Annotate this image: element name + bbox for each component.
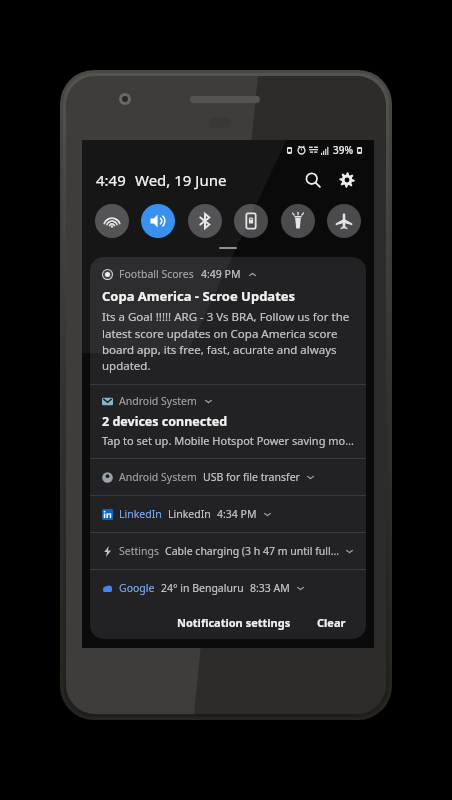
staticText: Wed, 19 June: [135, 170, 227, 190]
staticText: 2 devices connected: [102, 413, 228, 430]
button[interactable]: Search: [300, 167, 326, 193]
staticText: Cable charging (3 h 47 m until fully c..…: [165, 544, 339, 558]
button[interactable]: Sound: [141, 204, 175, 238]
button[interactable]: Airplane mode: [327, 204, 361, 238]
button[interactable]: Settings: [90, 533, 366, 569]
staticText: Its a Goal !!!!! ARG - 3 Vs BRA, Follow …: [102, 309, 354, 373]
button[interactable]: Android System: [90, 459, 366, 495]
button[interactable]: Android System: [90, 385, 366, 458]
staticText: Clear: [317, 615, 346, 630]
button[interactable]: Auto rotate: [234, 204, 268, 238]
staticText: LinkedIn: [168, 507, 211, 521]
button[interactable]: Wi-Fi: [95, 204, 129, 238]
staticText: LinkedIn: [119, 507, 162, 521]
staticText: Settings: [119, 544, 159, 558]
staticText: 4:49 PM: [201, 267, 241, 281]
staticText: Android System: [119, 394, 197, 408]
button[interactable]: Google: [90, 570, 366, 606]
staticText: Football Scores: [119, 267, 194, 281]
staticText: Notification settings: [177, 615, 291, 630]
button[interactable]: Flashlight: [281, 204, 315, 238]
staticText: Tap to set up. Mobile Hotspot Power savi…: [102, 433, 354, 448]
button[interactable]: Football Scores: [90, 257, 366, 384]
staticText: 8:33 AM: [250, 581, 290, 595]
button[interactable]: Notification settings: [171, 611, 297, 634]
staticText: 39%: [333, 143, 353, 157]
staticText: Google: [119, 581, 155, 595]
staticText: USB for file transfer: [203, 470, 300, 484]
staticText: 4:49: [96, 170, 126, 190]
button[interactable]: Clear: [311, 611, 352, 634]
button[interactable]: Settings: [334, 167, 360, 193]
staticText: 24° in Bengaluru: [161, 581, 244, 595]
staticText: Copa America - Scroe Updates: [102, 287, 296, 305]
staticText: Android System: [119, 470, 197, 484]
staticText: 4:34 PM: [217, 507, 257, 521]
button[interactable]: LinkedIn: [90, 496, 366, 532]
button[interactable]: Bluetooth: [188, 204, 222, 238]
